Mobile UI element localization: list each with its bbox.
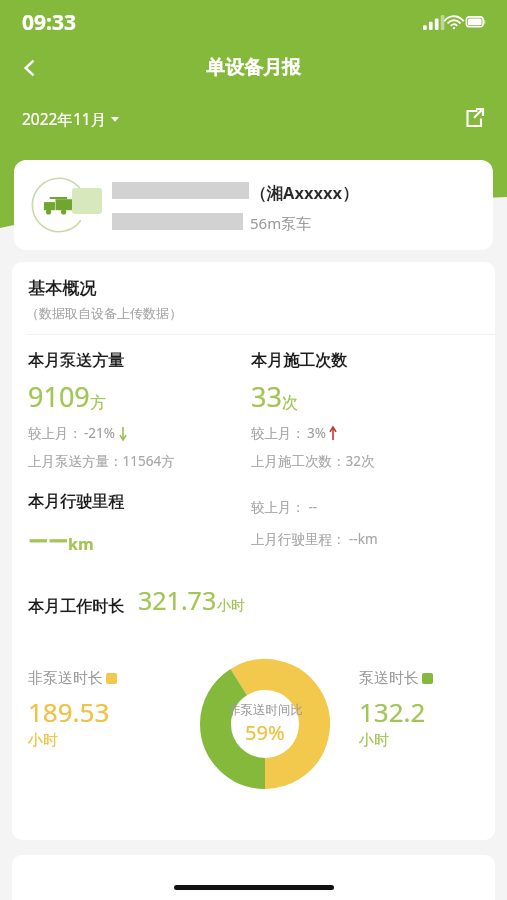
staticText: 189.53	[28, 694, 110, 729]
staticText: 上月行驶里程： --km	[251, 530, 378, 548]
staticText: 本月施工次数	[251, 351, 347, 371]
staticText: 33	[251, 378, 282, 415]
button[interactable]: （湘Axxxxx）	[14, 160, 493, 250]
staticText: 单设备月报	[206, 56, 301, 80]
staticText: 基本概况	[28, 278, 96, 299]
staticText: 本月工作时长	[28, 597, 124, 617]
staticText: 132.2	[359, 694, 426, 729]
button[interactable]: Share	[451, 96, 495, 140]
staticText: 2022年11月	[22, 108, 107, 129]
staticText: 泵送时长	[359, 669, 419, 688]
staticText: 3%	[307, 424, 326, 442]
staticText: 较上月：	[28, 425, 82, 442]
staticText: 09:33	[22, 8, 76, 37]
staticText: 9109	[28, 378, 90, 415]
staticText: ーー	[28, 530, 68, 555]
staticText: （湘Axxxxx）	[250, 181, 359, 204]
staticText: -21%	[84, 424, 116, 442]
button[interactable]: Back	[8, 46, 52, 90]
staticText: 小时	[28, 731, 58, 750]
staticText: 321.73	[138, 583, 217, 617]
staticText: 上月泵送方量：11564方	[28, 452, 175, 470]
staticText: 次	[282, 393, 298, 413]
staticText: 56m泵车	[250, 213, 312, 233]
staticText: km	[68, 533, 94, 555]
staticText: 本月泵送方量	[28, 351, 124, 371]
staticText: 上月施工次数：32次	[251, 452, 375, 470]
staticText: 较上月：	[251, 425, 305, 442]
button[interactable]: 2022年11月	[18, 102, 123, 135]
staticText: 59%	[245, 719, 285, 746]
staticText: 小时	[217, 597, 245, 615]
staticText: 小时	[359, 731, 389, 750]
staticText: 本月行驶里程	[28, 492, 124, 512]
staticText: 非泵送时长	[28, 669, 103, 688]
staticText: 较上月： --	[251, 498, 318, 516]
staticText: （数据取自设备上传数据）	[26, 305, 182, 321]
staticText: 非泵送时间比	[228, 702, 303, 718]
staticText: 方	[90, 393, 106, 413]
